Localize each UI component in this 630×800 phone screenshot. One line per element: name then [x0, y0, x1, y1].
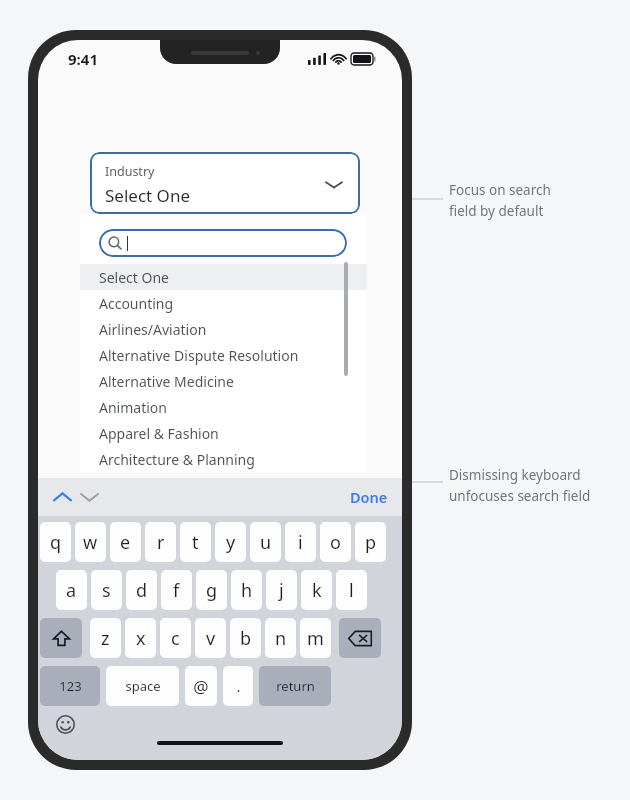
- staticText: Apparel & Fashion: [99, 424, 219, 443]
- staticText: 123: [59, 677, 82, 695]
- staticText: f: [173, 578, 180, 603]
- button[interactable]: d: [126, 570, 157, 610]
- button[interactable]: Animation: [80, 394, 367, 420]
- staticText: Alternative Medicine: [99, 372, 234, 391]
- button[interactable]: return: [259, 666, 331, 706]
- staticText: i: [298, 530, 303, 555]
- staticText: q: [50, 530, 62, 555]
- button[interactable]: Next field: [80, 491, 99, 503]
- button[interactable]: Alternative Dispute Resolution: [80, 342, 367, 368]
- staticText: return: [276, 677, 315, 695]
- button[interactable]: Shift: [40, 618, 82, 658]
- staticText: o: [330, 530, 341, 555]
- staticText: Done: [350, 487, 388, 507]
- button[interactable]: r: [145, 522, 176, 562]
- staticText: g: [206, 578, 218, 603]
- button[interactable]: j: [266, 570, 297, 610]
- staticText: x: [136, 626, 146, 651]
- button[interactable]: h: [231, 570, 262, 610]
- staticText: .: [236, 676, 241, 696]
- staticText: s: [102, 578, 111, 603]
- button[interactable]: i: [285, 522, 316, 562]
- button[interactable]: Backspace: [339, 618, 381, 658]
- staticText: Select One: [99, 268, 169, 287]
- staticText: Dismissing keyboard: [449, 466, 581, 484]
- staticText: p: [365, 530, 377, 555]
- staticText: field by default: [449, 202, 544, 220]
- staticText: l: [349, 578, 354, 603]
- staticText: j: [279, 578, 284, 603]
- staticText: Architecture & Planning: [99, 450, 255, 469]
- staticText: t: [192, 530, 199, 555]
- staticText: z: [101, 626, 110, 651]
- staticText: Focus on search: [449, 181, 551, 199]
- button[interactable]: @: [185, 666, 217, 706]
- staticText: unfocuses search field: [449, 487, 591, 505]
- button[interactable]: Industry: [90, 152, 360, 214]
- button[interactable]: Airlines/Aviation: [80, 316, 367, 342]
- button[interactable]: n: [265, 618, 296, 658]
- staticText: r: [157, 530, 165, 555]
- button[interactable]: t: [180, 522, 211, 562]
- button[interactable]: v: [195, 618, 226, 658]
- staticText: Select One: [105, 184, 190, 207]
- button[interactable]: u: [250, 522, 281, 562]
- button[interactable]: q: [40, 522, 71, 562]
- button[interactable]: y: [215, 522, 246, 562]
- staticText: b: [240, 626, 252, 651]
- staticText: space: [125, 677, 161, 695]
- staticText: w: [83, 530, 98, 555]
- staticText: a: [66, 578, 77, 603]
- button[interactable]: Previous field: [53, 491, 72, 503]
- staticText: Industry: [105, 163, 155, 180]
- button[interactable]: Done: [350, 487, 388, 507]
- button[interactable]: f: [161, 570, 192, 610]
- button[interactable]: x: [125, 618, 156, 658]
- button[interactable]: o: [320, 522, 351, 562]
- button[interactable]: .: [223, 666, 253, 706]
- button[interactable]: Apparel & Fashion: [80, 420, 367, 446]
- staticText: u: [260, 530, 272, 555]
- button[interactable]: e: [110, 522, 141, 562]
- staticText: Airlines/Aviation: [99, 320, 207, 339]
- button[interactable]: p: [355, 522, 386, 562]
- staticText: e: [120, 530, 131, 555]
- staticText: @: [193, 675, 209, 698]
- button[interactable]: c: [160, 618, 191, 658]
- button[interactable]: space: [106, 666, 179, 706]
- button[interactable]: 123: [40, 666, 100, 706]
- staticText: Alternative Dispute Resolution: [99, 346, 299, 365]
- button[interactable]: Emoji: [56, 715, 75, 734]
- button[interactable]: Alternative Medicine: [80, 368, 367, 394]
- staticText: Accounting: [99, 294, 174, 313]
- staticText: v: [206, 626, 216, 651]
- staticText: d: [136, 578, 148, 603]
- button[interactable]: z: [90, 618, 121, 658]
- staticText: y: [226, 530, 236, 555]
- button[interactable]: Search: [99, 229, 347, 257]
- button[interactable]: a: [56, 570, 87, 610]
- button[interactable]: Accounting: [80, 290, 367, 316]
- button[interactable]: g: [196, 570, 227, 610]
- other: Search: [108, 236, 122, 250]
- button[interactable]: w: [75, 522, 106, 562]
- staticText: 9:41: [68, 49, 98, 69]
- staticText: n: [275, 626, 287, 651]
- button[interactable]: b: [230, 618, 261, 658]
- staticText: k: [312, 578, 322, 603]
- button[interactable]: m: [300, 618, 331, 658]
- staticText: h: [241, 578, 253, 603]
- button[interactable]: l: [336, 570, 367, 610]
- button[interactable]: k: [301, 570, 332, 610]
- staticText: m: [307, 626, 324, 651]
- button[interactable]: Select One: [80, 264, 367, 290]
- button[interactable]: s: [91, 570, 122, 610]
- button[interactable]: Architecture & Planning: [80, 446, 367, 472]
- staticText: Animation: [99, 398, 167, 417]
- staticText: c: [171, 626, 180, 651]
